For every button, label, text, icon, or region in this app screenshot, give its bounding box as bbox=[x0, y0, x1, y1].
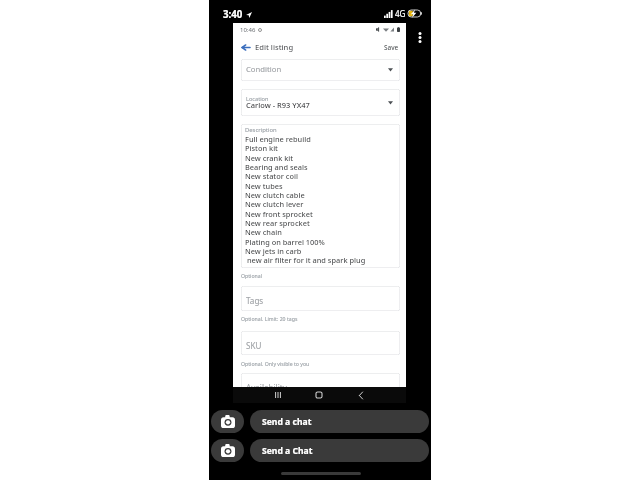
staticText: Optional. Only visible to you bbox=[241, 360, 310, 367]
staticText: Condition bbox=[246, 64, 282, 74]
button[interactable]: Location bbox=[241, 89, 400, 116]
button[interactable]: Back bbox=[340, 387, 382, 403]
staticText: Description bbox=[245, 126, 277, 134]
staticText: Edit listing bbox=[255, 42, 294, 52]
staticText: Plating on barrel 100% bbox=[245, 237, 325, 247]
button[interactable]: More options bbox=[410, 28, 429, 47]
staticText: New rear sprocket bbox=[245, 218, 310, 228]
staticText: Bearing and seals bbox=[245, 162, 308, 172]
button[interactable]: Camera bbox=[211, 410, 244, 433]
staticText: New front sprocket bbox=[245, 209, 313, 219]
staticText: New jets in carb bbox=[245, 246, 302, 256]
button[interactable]: SKU bbox=[241, 331, 400, 355]
staticText: Carlow - R93 YX47 bbox=[246, 100, 310, 110]
staticText: New chain bbox=[245, 227, 282, 237]
button[interactable]: Back bbox=[239, 39, 252, 55]
staticText: Piston kit bbox=[245, 143, 278, 153]
staticText: new air filter for it and spark plug bbox=[245, 255, 366, 265]
button[interactable]: Availability bbox=[241, 373, 400, 397]
staticText: 3:40 bbox=[223, 8, 243, 21]
button[interactable]: Recents bbox=[257, 387, 298, 403]
staticText: New clutch lever bbox=[245, 199, 304, 209]
button[interactable]: Save bbox=[381, 39, 402, 56]
staticText: Full engine rebuild bbox=[245, 134, 311, 144]
staticText: Optional bbox=[241, 272, 263, 279]
staticText: New clutch cable bbox=[245, 190, 305, 200]
staticText: New crank kit bbox=[245, 153, 294, 163]
staticText: Availability bbox=[246, 382, 287, 393]
staticText: Save bbox=[384, 43, 399, 52]
staticText: 4G bbox=[395, 8, 406, 19]
staticText: New tubes bbox=[245, 181, 283, 191]
button[interactable]: Home bbox=[298, 387, 340, 403]
staticText: Tags bbox=[246, 295, 264, 306]
button[interactable]: Camera bbox=[211, 439, 244, 462]
button[interactable]: Description bbox=[241, 124, 400, 268]
staticText: Send a Chat bbox=[262, 445, 313, 457]
button[interactable]: Send a Chat bbox=[250, 439, 429, 462]
staticText: Send a chat bbox=[262, 416, 312, 428]
button[interactable]: Tags bbox=[241, 286, 400, 311]
staticText: New stator coil bbox=[245, 171, 298, 181]
staticText: Location bbox=[246, 95, 269, 103]
button[interactable]: Send a chat bbox=[250, 410, 429, 433]
button[interactable]: Condition bbox=[241, 59, 400, 81]
staticText: SKU bbox=[246, 340, 262, 351]
staticText: 10:46 bbox=[240, 26, 256, 34]
staticText: Optional. Limit: 20 tags bbox=[241, 315, 298, 322]
